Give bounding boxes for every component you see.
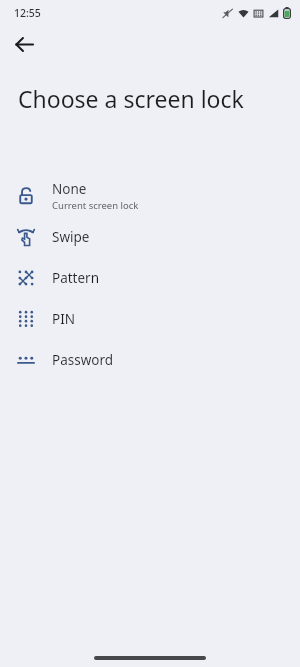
- staticText: Choose a screen lock: [18, 83, 244, 114]
- button[interactable]: Swipe: [0, 216, 300, 257]
- button[interactable]: Password: [0, 339, 300, 380]
- button[interactable]: Pattern: [0, 257, 300, 298]
- staticText: None: [52, 180, 87, 198]
- staticText: Pattern: [52, 269, 100, 287]
- staticText: 12:55: [14, 6, 41, 20]
- staticText: Password: [52, 351, 114, 369]
- button[interactable]: None: [0, 175, 300, 216]
- staticText: Current screen lock: [52, 199, 139, 212]
- button[interactable]: Back: [6, 26, 42, 62]
- staticText: Swipe: [52, 228, 90, 246]
- staticText: PIN: [52, 310, 76, 328]
- button[interactable]: PIN: [0, 298, 300, 339]
